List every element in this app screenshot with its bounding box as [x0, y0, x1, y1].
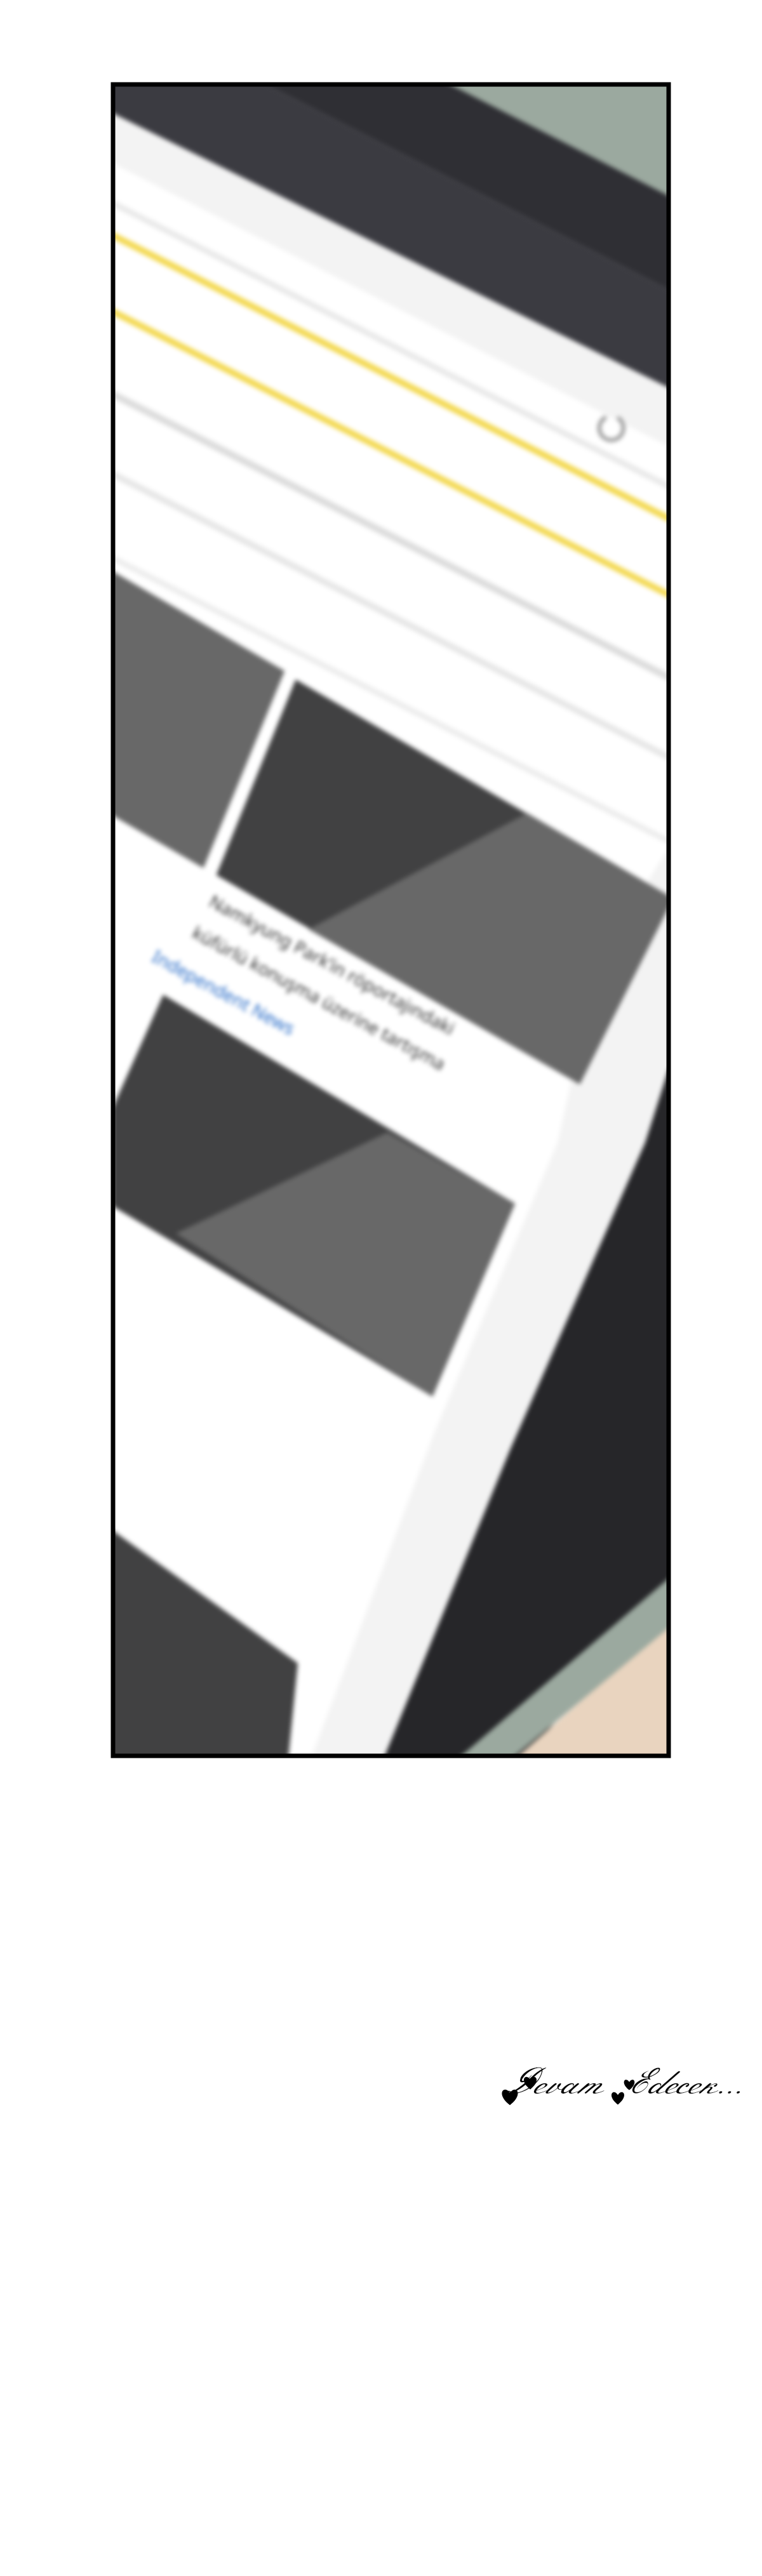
button[interactable]: News app comic panel — [0, 0, 762, 2576]
